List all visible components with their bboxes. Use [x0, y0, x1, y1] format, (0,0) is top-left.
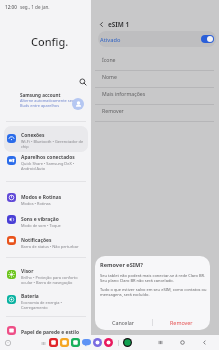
staticText: Quick Share • Samsung DeX •	[21, 161, 75, 166]
staticText: ocular • Barra de navegação	[21, 280, 73, 285]
staticText: Papel de parede e estilo	[21, 329, 79, 336]
staticText: Economia de energia •	[21, 300, 62, 305]
staticText: 12:00	[5, 4, 17, 10]
button[interactable]: Samsung account	[4, 89, 88, 119]
staticText: Samsung account	[20, 92, 61, 98]
staticText: Remover eSIM?	[100, 261, 143, 269]
staticText: Nome	[102, 73, 117, 80]
staticText: Config.	[31, 34, 69, 49]
staticText: Ativado	[100, 36, 121, 44]
staticText: Tudo o que estiver salvo em seu eSIM, co…	[100, 287, 207, 292]
button[interactable]: Cancelar	[95, 315, 152, 330]
staticText: Buds entre aparelhos	[20, 103, 60, 108]
staticText: Modo de som • Toque	[21, 223, 61, 228]
staticText: Wi-Fi • Bluetooth • Gerenciador de	[21, 139, 84, 144]
button[interactable]: Início	[178, 338, 187, 347]
button[interactable]: Aplicativo 3	[71, 338, 80, 347]
staticText: Seu plano Claro BR não será cancelado.	[100, 278, 174, 283]
button[interactable]: Remover	[91, 102, 219, 119]
button[interactable]: Aplicativo 5	[93, 338, 102, 347]
staticText: Modos e Rotinas	[21, 194, 62, 201]
staticText: Brilho • Proteção para conforto	[21, 275, 78, 280]
staticText: Sons e vibração	[21, 216, 59, 223]
button[interactable]: Bateria	[4, 287, 88, 311]
staticText: Barra de status • Não perturbar	[21, 244, 79, 249]
staticText: Remover	[102, 107, 124, 114]
staticText: Modos • Rotinas	[21, 201, 51, 206]
staticText: eSIM 1	[108, 20, 130, 29]
button[interactable]: Conexões	[4, 125, 88, 151]
staticText: Cancelar	[112, 319, 135, 326]
staticText: Aparelhos conectados	[21, 154, 75, 161]
staticText: Ícone	[102, 56, 116, 63]
staticText: Bateria	[21, 293, 39, 300]
button[interactable]: Ativado	[201, 35, 214, 43]
staticText: Conexões	[21, 132, 45, 139]
button[interactable]: Modos e Rotinas	[4, 188, 88, 207]
button[interactable]: Voltar	[95, 18, 107, 30]
button[interactable]: Apps	[39, 339, 47, 347]
staticText: chip	[21, 144, 29, 149]
staticText: Carregamento	[21, 305, 48, 310]
button[interactable]: Aplicativo 4	[82, 338, 91, 347]
staticText: Visor	[21, 268, 34, 275]
button[interactable]: Aparelhos conectados	[4, 148, 88, 172]
staticText: Seu tablet não poderá mais conectar-se à…	[100, 273, 206, 278]
button[interactable]: Assistente	[4, 339, 12, 347]
button[interactable]: Notificações	[4, 231, 88, 250]
button[interactable]: Remover	[153, 315, 210, 330]
button[interactable]: Mais informações	[91, 85, 219, 102]
button[interactable]: Recentes	[156, 338, 165, 347]
button[interactable]: Voltar	[200, 338, 209, 347]
staticText: seg., 1 de jan.	[20, 4, 50, 10]
button[interactable]: Sons e vibração	[4, 210, 88, 229]
staticText: Android Auto	[21, 166, 46, 171]
button[interactable]: Aplicativo 2	[60, 338, 69, 347]
button[interactable]: Nome	[91, 68, 219, 85]
button[interactable]: Papel de parede e estilo	[4, 322, 88, 338]
staticText: Alterne automaticamente seus	[20, 98, 77, 103]
button[interactable]: Visor	[4, 262, 88, 286]
button[interactable]: Pesquisar	[77, 76, 89, 88]
button[interactable]: Aplicativo 6	[104, 338, 113, 347]
button[interactable]: Aplicativo 7	[123, 338, 132, 347]
staticText: Remover	[170, 319, 193, 326]
button[interactable]: Aplicativo 1	[49, 338, 58, 347]
staticText: Notificações	[21, 237, 52, 244]
button[interactable]: Ícone	[91, 51, 219, 68]
staticText: Mais informações	[102, 90, 146, 97]
button[interactable]	[98, 31, 216, 47]
staticText: mensagens, será excluído.	[100, 292, 150, 297]
